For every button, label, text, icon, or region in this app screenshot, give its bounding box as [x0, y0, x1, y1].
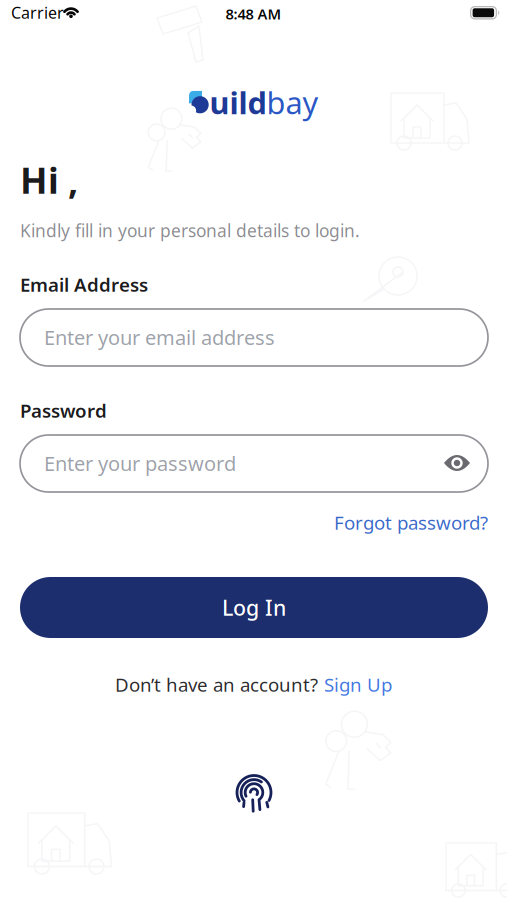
- staticText: bay: [266, 82, 318, 123]
- button[interactable]: Sign Up: [324, 672, 392, 697]
- staticText: Forgot password?: [334, 510, 488, 535]
- staticText: Email Address: [20, 272, 148, 297]
- staticText: Don’t have an account?: [115, 672, 318, 697]
- staticText: 8:48 AM: [225, 4, 281, 23]
- staticText: Carrier: [11, 2, 64, 23]
- button[interactable]: Forgot password?: [334, 510, 488, 535]
- staticText: Enter your password: [44, 450, 236, 477]
- staticText: Enter your email address: [44, 324, 275, 351]
- staticText: Sign Up: [324, 672, 392, 697]
- staticText: Password: [20, 398, 107, 423]
- staticText: Kindly fill in your personal details to …: [20, 219, 360, 242]
- button[interactable]: Log In: [20, 577, 488, 638]
- staticText: uild: [209, 82, 266, 123]
- button[interactable]: [440, 450, 474, 476]
- staticText: Hi ,: [20, 156, 78, 204]
- button[interactable]: Enter your email address: [20, 309, 488, 366]
- button[interactable]: [232, 769, 276, 815]
- button[interactable]: Enter your password: [20, 435, 488, 492]
- staticText: Log In: [222, 593, 286, 622]
